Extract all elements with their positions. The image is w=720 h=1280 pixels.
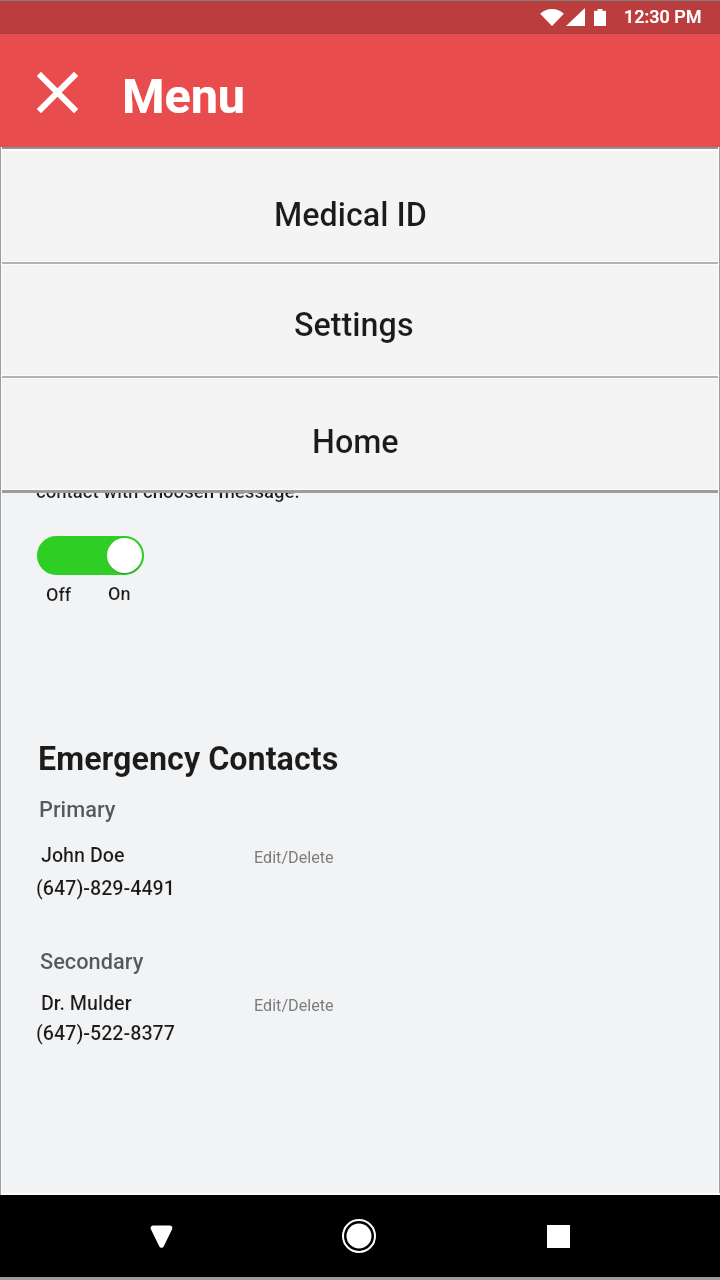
staticText: Dr. Mulder — [41, 992, 132, 1015]
staticText: contact with choosen message. — [36, 481, 300, 503]
staticText: (647)-829-4491 — [36, 877, 175, 900]
staticText: John Doe — [41, 844, 125, 867]
staticText: Menu — [122, 68, 246, 125]
staticText: 12:30 PM — [624, 6, 702, 27]
button[interactable]: Home — [319, 1194, 399, 1280]
button[interactable]: Medical ID — [0, 151, 720, 261]
staticText: Home — [312, 423, 399, 461]
staticText: Edit/Delete — [254, 996, 334, 1015]
button[interactable]: Emergency message toggle, on — [37, 536, 144, 575]
button[interactable]: Home — [0, 380, 720, 489]
staticText: Secondary — [40, 949, 144, 975]
button[interactable]: Back — [120, 1194, 200, 1280]
button[interactable]: Close menu — [29, 64, 85, 120]
button[interactable]: Recent apps — [518, 1194, 598, 1280]
staticText: Medical ID — [274, 196, 427, 234]
staticText: Primary — [39, 797, 116, 823]
button[interactable]: Edit/Delete — [254, 848, 334, 867]
button[interactable]: Edit/Delete — [254, 996, 334, 1015]
staticText: Settings — [294, 306, 414, 344]
staticText: Edit/Delete — [254, 848, 334, 867]
staticText: (647)-522-8377 — [36, 1022, 175, 1045]
button[interactable]: Settings — [0, 265, 720, 375]
staticText: On — [108, 583, 131, 604]
staticText: Off — [46, 584, 72, 605]
staticText: Emergency Contacts — [38, 740, 339, 778]
